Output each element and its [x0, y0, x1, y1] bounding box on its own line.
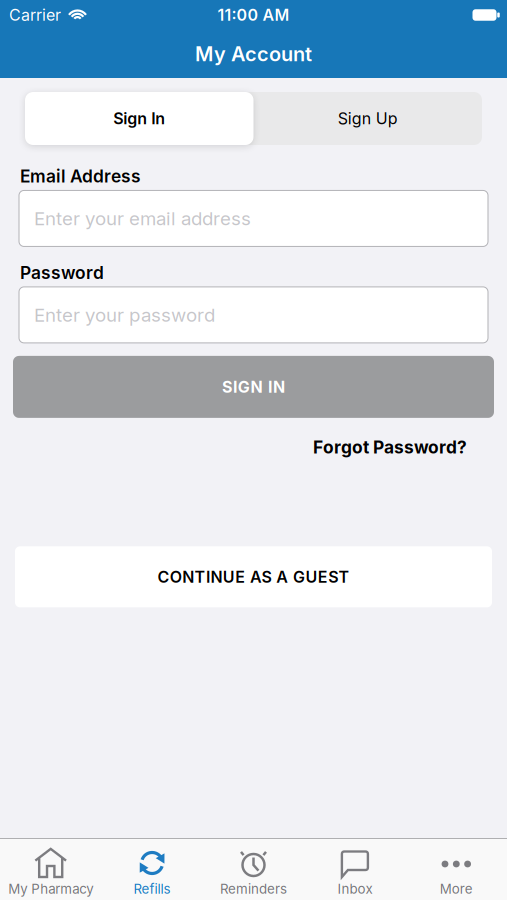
button[interactable]: Inbox	[304, 848, 406, 897]
button[interactable]: Enter your email address	[0, 190, 507, 246]
staticText: My Pharmacy	[8, 881, 93, 897]
staticText: Carrier	[9, 6, 61, 24]
staticText: SIGN IN	[222, 377, 285, 396]
staticText: Email Address	[20, 166, 141, 186]
button[interactable]: Reminders	[203, 848, 304, 897]
staticText: 11:00 AM	[217, 6, 289, 24]
button[interactable]: Enter your password	[0, 287, 507, 343]
staticText: Inbox	[337, 881, 372, 897]
button[interactable]: Forgot Password?	[313, 437, 467, 457]
staticText: More	[440, 881, 473, 897]
staticText: Password	[20, 262, 104, 283]
button[interactable]: SIGN IN	[0, 356, 507, 418]
staticText: My Account	[195, 42, 312, 66]
button[interactable]: My Pharmacy	[0, 848, 101, 897]
staticText: Sign Up	[338, 109, 398, 128]
staticText: Reminders	[220, 881, 287, 897]
staticText: Refills	[134, 881, 171, 897]
button[interactable]: More	[406, 848, 507, 897]
button[interactable]: Refills	[101, 848, 203, 897]
staticText: CONTINUE AS A GUEST	[157, 567, 350, 586]
staticText: Enter your email address	[34, 207, 251, 229]
button[interactable]: Sign Up	[253, 92, 482, 145]
button[interactable]: Sign In	[25, 92, 253, 145]
button[interactable]: CONTINUE AS A GUEST	[0, 546, 507, 607]
staticText: Forgot Password?	[313, 437, 467, 457]
staticText: Sign In	[113, 109, 165, 128]
staticText: Enter your password	[34, 304, 215, 326]
